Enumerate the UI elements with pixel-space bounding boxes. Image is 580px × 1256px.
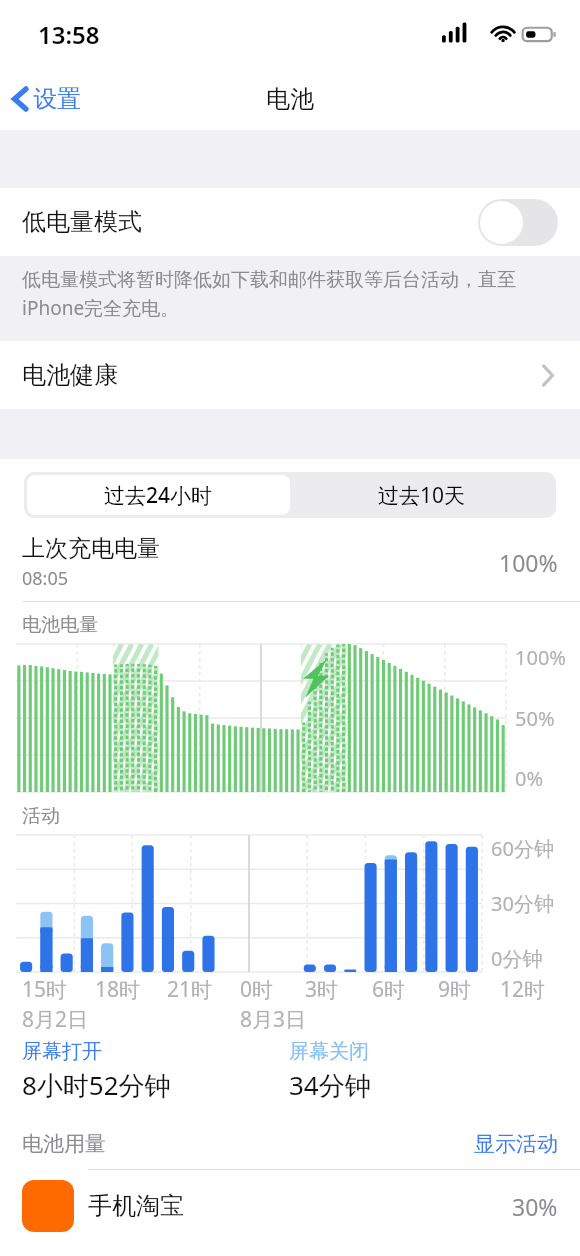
button[interactable]: 手机淘宝 xyxy=(0,1170,580,1242)
staticText: 显示活动 xyxy=(474,1131,558,1157)
staticText: 34分钟 xyxy=(289,1067,371,1103)
button[interactable]: 过去10天 xyxy=(290,475,553,515)
button[interactable]: 低电量模式开关 xyxy=(478,199,558,246)
staticText: 100% xyxy=(515,644,566,671)
staticText: 13:58 xyxy=(38,18,100,51)
staticText: 活动 xyxy=(22,804,60,828)
staticText: 30分钟 xyxy=(491,890,554,917)
staticText: 12时 xyxy=(500,975,546,1004)
staticText: 8月3日 xyxy=(240,1005,307,1034)
staticText: 18时 xyxy=(95,975,141,1004)
button[interactable]: 设置 xyxy=(0,76,95,122)
button[interactable]: 显示活动 xyxy=(474,1131,558,1157)
staticText: 电池电量 xyxy=(22,613,98,637)
staticText: 电池用量 xyxy=(22,1131,106,1157)
staticText: 0分钟 xyxy=(491,945,543,972)
staticText: 60分钟 xyxy=(491,835,554,862)
staticText: 屏幕打开 xyxy=(22,1039,102,1064)
staticText: 08:05 xyxy=(22,566,69,591)
staticText: 9时 xyxy=(438,975,472,1004)
staticText: 50% xyxy=(515,705,555,732)
button[interactable]: 低电量模式 xyxy=(0,188,580,256)
staticText: 低电量模式 xyxy=(22,207,142,237)
staticText: 100% xyxy=(499,547,558,578)
staticText: 8小时52分钟 xyxy=(22,1067,171,1103)
staticText: 30% xyxy=(512,1191,558,1222)
staticText: 0时 xyxy=(240,975,274,1004)
staticText: 6时 xyxy=(372,975,406,1004)
button[interactable]: 电池健康 xyxy=(0,341,580,409)
staticText: 过去10天 xyxy=(378,481,466,510)
staticText: 电池健康 xyxy=(22,360,118,390)
staticText: 8月2日 xyxy=(22,1005,89,1034)
staticText: 手机淘宝 xyxy=(88,1191,184,1221)
staticText: 设置 xyxy=(33,84,81,114)
staticText: 21时 xyxy=(167,975,213,1004)
staticText: 3时 xyxy=(305,975,339,1004)
staticText: 屏幕关闭 xyxy=(289,1039,369,1064)
button[interactable]: 过去24小时 xyxy=(27,475,290,515)
staticText: 电池 xyxy=(266,84,314,114)
staticText: 上次充电电量 xyxy=(22,534,160,563)
staticText: 过去24小时 xyxy=(104,481,213,510)
staticText: 15时 xyxy=(22,975,68,1004)
staticText: 低电量模式将暂时降低如下载和邮件获取等后台活动，直至 iPhone完全充电。 xyxy=(22,268,516,321)
staticText: 0% xyxy=(515,765,544,792)
